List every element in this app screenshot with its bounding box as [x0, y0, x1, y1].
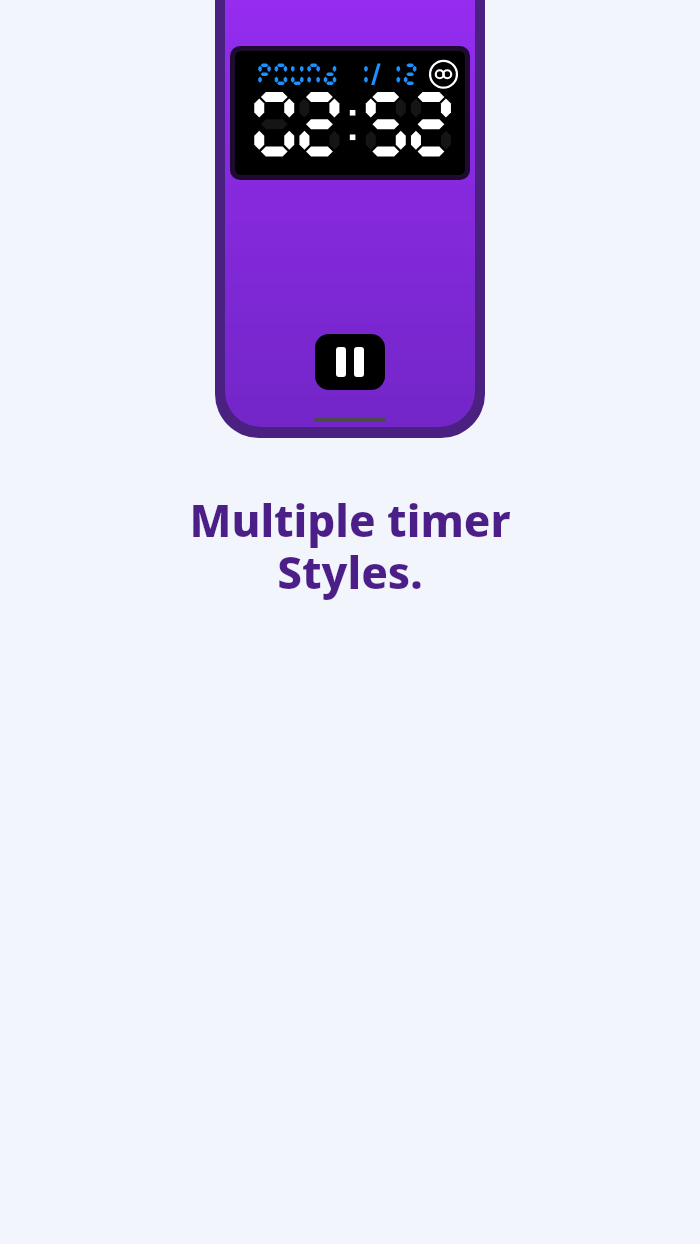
button[interactable]: Pause: [315, 334, 385, 390]
button[interactable]: [235, 51, 465, 175]
staticText: Multiple timer Styles.: [189, 490, 511, 602]
